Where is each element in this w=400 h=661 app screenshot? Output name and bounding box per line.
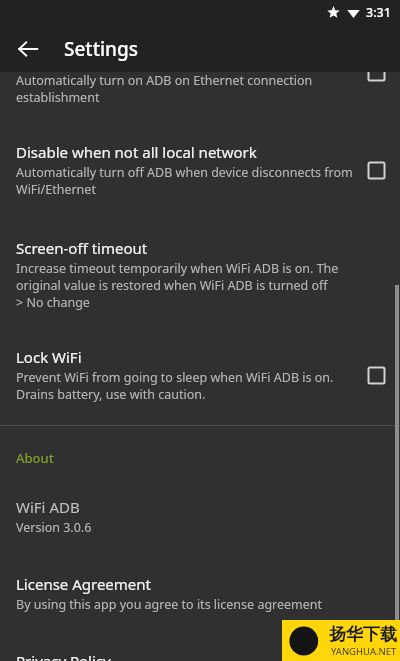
staticText: License Agreement (16, 574, 152, 594)
button[interactable]: WiFi ADB (0, 497, 400, 536)
button[interactable]: Automatically turn on ADB on Ethernet co… (0, 72, 400, 106)
staticText: Lock WiFi (16, 347, 82, 367)
button[interactable]: Disable when not all local network (0, 142, 400, 198)
staticText: 扬华下载 (329, 624, 397, 645)
button[interactable]: Screen-off timeout (0, 238, 400, 311)
button[interactable]: Lock WiFi (0, 347, 400, 403)
button[interactable]: Privacy Policy (0, 651, 400, 661)
staticText: Automatically turn off ADB when device d… (16, 164, 353, 198)
staticText: Settings (64, 36, 138, 62)
staticText: Automatically turn on ADB on Ethernet co… (16, 72, 353, 106)
staticText: By using this app you agree to its licen… (16, 596, 323, 613)
staticText: YANGHUA.NET (331, 645, 397, 658)
staticText: Prevent WiFi from going to sleep when Wi… (16, 369, 353, 403)
staticText: Privacy Policy (16, 651, 111, 661)
staticText: WiFi ADB (16, 497, 80, 517)
staticText: 3:31 (366, 4, 391, 21)
staticText: Disable when not all local network (16, 142, 257, 162)
button[interactable]: Back (9, 30, 47, 68)
staticText: About (16, 449, 54, 467)
staticText: Version 3.0.6 (16, 519, 92, 536)
staticText: Screen-off timeout (16, 238, 148, 258)
staticText: Increase timeout temporarily when WiFi A… (16, 260, 372, 311)
button[interactable]: License Agreement (0, 574, 400, 613)
